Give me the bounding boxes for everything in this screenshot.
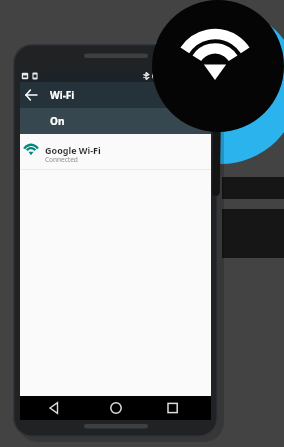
button[interactable]: Back: [42, 399, 68, 417]
button[interactable]: Home: [103, 399, 129, 417]
button[interactable]: [20, 108, 211, 134]
staticText: On: [50, 114, 65, 128]
button[interactable]: Recent apps: [160, 399, 186, 417]
staticText: Google Wi-Fi: [45, 144, 101, 156]
staticText: Wi-Fi: [50, 88, 75, 102]
button[interactable]: Navigate up: [24, 86, 42, 104]
button[interactable]: [20, 136, 211, 169]
staticText: Connected: [45, 155, 78, 164]
